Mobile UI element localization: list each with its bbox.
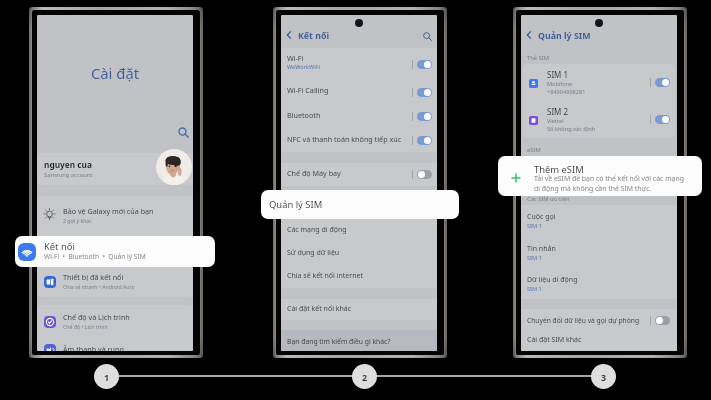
button[interactable]: Bảo vệ Galaxy mới của bạn	[37, 196, 193, 233]
button[interactable]: Toggle	[655, 115, 670, 124]
staticText: Thẻ SIM	[527, 54, 549, 62]
staticText: Bạn đang tìm kiếm điều gì khác?	[287, 337, 391, 346]
staticText: 3	[601, 371, 607, 383]
button[interactable]: Wi-Fi	[281, 48, 437, 80]
staticText: Chế độ • Lịch trình	[63, 323, 108, 330]
staticText: eSIM	[527, 146, 541, 154]
staticText: Kết nối	[44, 240, 75, 253]
staticText: Quản lý SIM	[287, 202, 327, 212]
button[interactable]: Chế độ và Lịch trình	[37, 305, 193, 337]
staticText: Chế độ Máy bay	[287, 168, 341, 178]
button[interactable]: NFC và thanh toán không tiếp xúc	[281, 129, 437, 152]
button[interactable]: SIM 2	[523, 101, 675, 138]
staticText: Cuộc gọi	[527, 212, 556, 222]
staticText: Wi-Fi • Bluetooth • Quản lý SIM	[44, 252, 146, 261]
button[interactable]: Kết nối	[37, 233, 193, 265]
button[interactable]: Chuyển đổi dữ liệu và gọi dự phòng	[521, 309, 677, 331]
button[interactable]: Toggle	[655, 78, 670, 87]
button[interactable]: Dữ liệu di động	[521, 268, 677, 299]
button[interactable]: Toggle	[417, 60, 432, 69]
staticText: SIM 1	[527, 285, 542, 293]
button[interactable]: Back	[283, 29, 295, 41]
staticText: Mobifone	[547, 80, 573, 88]
staticText: NFC và thanh toán không tiếp xúc	[287, 134, 402, 144]
button[interactable]: 3	[591, 364, 616, 389]
button[interactable]: Search	[177, 126, 190, 139]
button[interactable]: Quản lý SIM	[281, 196, 437, 219]
staticText: Chia sẻ kết nối internet	[287, 271, 363, 281]
staticText: Thiết bị đã kết nối	[63, 272, 124, 282]
staticText: Wi-Fi Calling	[287, 85, 329, 95]
button[interactable]: Quản lý SIM	[261, 190, 459, 219]
button[interactable]: Chế độ Máy bay	[281, 163, 437, 186]
button[interactable]: 2	[352, 364, 377, 389]
staticText: SIM 2	[547, 106, 569, 117]
staticText: Chia sẻ nhanh • Android Auto	[63, 283, 135, 290]
staticText: Chế độ và Lịch trình	[63, 312, 130, 322]
staticText: Các mạng di động	[287, 225, 347, 235]
staticText: Viettel	[547, 117, 564, 125]
button[interactable]: Wi-Fi Calling	[281, 80, 437, 104]
staticText: Bluetooth	[287, 110, 321, 120]
staticText: Quản lý SIM	[538, 30, 591, 42]
staticText: 1	[104, 371, 110, 383]
button[interactable]: Back	[523, 29, 535, 41]
button[interactable]: Toggle	[417, 112, 432, 121]
staticText: Chuyển đổi dữ liệu và gọi dự phòng	[527, 316, 650, 325]
button[interactable]: Kết nối	[15, 236, 215, 267]
staticText: Cài đặt	[37, 63, 193, 83]
button[interactable]: nguyen cua	[37, 153, 193, 185]
button[interactable]: SIM 1	[523, 64, 675, 101]
button[interactable]: Bạn đang tìm kiếm điều gì khác?	[281, 330, 437, 351]
staticText: Wi-Fi	[287, 53, 304, 63]
button[interactable]: Các mạng di động	[281, 219, 437, 242]
staticText: Kết nối	[63, 240, 87, 250]
button[interactable]: Toggle	[655, 316, 670, 325]
staticText: Sử dụng dữ liệu	[287, 248, 340, 258]
button[interactable]: 1	[94, 364, 119, 389]
button[interactable]: Thiết bị đã kết nối	[37, 265, 193, 297]
button[interactable]: Toggle	[417, 136, 432, 145]
button[interactable]: Sử dụng dữ liệu	[281, 242, 437, 265]
staticText: Các SIM ưu tiên	[527, 195, 570, 203]
staticText: Cài đặt SIM khác	[527, 335, 582, 345]
staticText: 2 gợi ý khác	[63, 217, 92, 224]
button[interactable]: Toggle	[417, 88, 432, 97]
staticText: Tải về eSIM để bạn có thể kết nối với cá…	[534, 174, 684, 183]
staticText: Số không xác định	[547, 125, 596, 133]
button[interactable]: Âm thanh và rung	[37, 337, 193, 351]
staticText: WeWorkWiFi	[287, 63, 321, 71]
staticText: Âm thanh và rung	[63, 344, 124, 351]
button[interactable]: Search	[422, 31, 433, 42]
staticText: Kết nối	[298, 30, 330, 42]
staticText: +84904908281	[547, 88, 586, 96]
staticText: SIM 1	[527, 222, 542, 230]
staticText: SIM 1	[547, 69, 569, 80]
button[interactable]: Profile picture	[156, 149, 192, 185]
staticText: Cài đặt kết nối khác	[287, 304, 352, 314]
staticText: SIM 1	[527, 254, 542, 262]
staticText: Bảo vệ Galaxy mới của bạn	[63, 206, 154, 216]
staticText: Wi-Fi • Bluetooth • Quản lý SIM	[63, 251, 138, 258]
staticText: 2	[362, 371, 368, 383]
staticText: di động mà không cần thẻ SIM thực.	[534, 184, 652, 193]
button[interactable]: Cuộc gọi	[521, 205, 677, 237]
staticText: Tin nhắn	[527, 244, 556, 254]
button[interactable]: Cài đặt SIM khác	[521, 331, 677, 351]
button[interactable]: Cài đặt kết nối khác	[281, 299, 437, 320]
staticText: Quản lý SIM	[269, 198, 323, 211]
staticText: nguyen cua	[44, 159, 92, 170]
button[interactable]: Toggle	[417, 170, 432, 179]
button[interactable]: Tin nhắn	[521, 237, 677, 268]
staticText: Thêm eSIM	[534, 163, 584, 176]
staticText: Samsung account	[44, 171, 93, 179]
staticText: Dữ liệu di động	[527, 275, 578, 285]
button[interactable]: Thêm eSIM	[498, 156, 702, 196]
button[interactable]: Chia sẻ kết nối internet	[281, 265, 437, 288]
button[interactable]: Bluetooth	[281, 104, 437, 129]
